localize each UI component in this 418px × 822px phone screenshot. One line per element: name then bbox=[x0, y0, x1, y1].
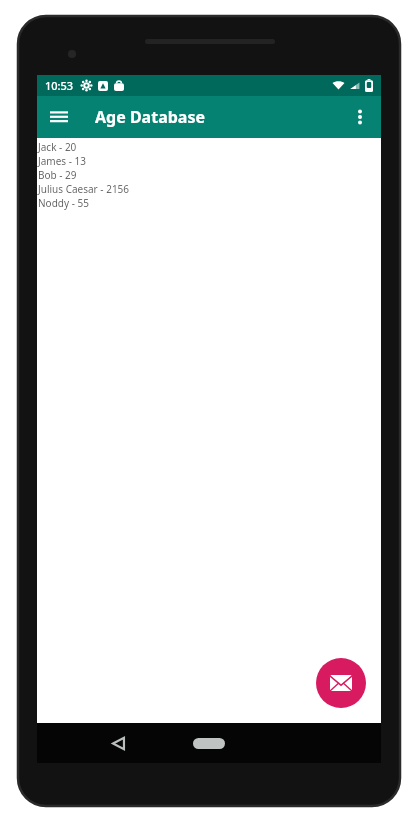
staticText: Julius Caesar - 2156 bbox=[38, 182, 130, 196]
button[interactable]: James - 13 bbox=[37, 154, 381, 168]
staticText: Age Database bbox=[95, 106, 206, 128]
button[interactable]: Jack - 20 bbox=[37, 140, 381, 154]
button[interactable]: Open navigation drawer bbox=[41, 99, 77, 135]
staticText: James - 13 bbox=[38, 154, 86, 168]
button[interactable]: Julius Caesar - 2156 bbox=[37, 182, 381, 196]
staticText: Jack - 20 bbox=[38, 140, 77, 154]
button[interactable]: Bob - 29 bbox=[37, 168, 381, 182]
staticText: Noddy - 55 bbox=[38, 196, 89, 210]
staticText: Bob - 29 bbox=[38, 168, 77, 182]
button[interactable]: Compose message bbox=[316, 658, 366, 708]
button[interactable]: Noddy - 55 bbox=[37, 196, 381, 210]
button[interactable]: More options bbox=[341, 98, 379, 136]
button[interactable]: Back bbox=[106, 731, 130, 755]
staticText: 10:53 bbox=[45, 78, 74, 93]
button[interactable]: Home bbox=[187, 731, 231, 755]
